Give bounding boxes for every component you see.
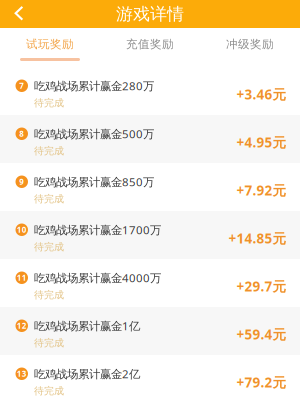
staticText: 8	[19, 128, 24, 139]
staticText: 待完成	[34, 144, 64, 157]
staticText: 13	[17, 368, 27, 379]
button[interactable]: 9	[0, 163, 300, 211]
button[interactable]: 7	[0, 67, 300, 115]
button[interactable]: 试玩奖励	[0, 28, 100, 67]
button[interactable]: Back	[0, 0, 38, 28]
staticText: 11	[17, 272, 27, 283]
staticText: 待完成	[34, 288, 64, 301]
staticText: 吃鸡战场累计赢金1亿	[34, 318, 140, 333]
staticText: +14.85元	[228, 229, 286, 247]
button[interactable]: 8	[0, 115, 300, 163]
staticText: 吃鸡战场累计赢金850万	[34, 174, 154, 189]
staticText: 吃鸡战场累计赢金1700万	[34, 222, 161, 237]
staticText: 吃鸡战场累计赢金280万	[34, 78, 154, 93]
staticText: 12	[17, 320, 27, 331]
staticText: 7	[19, 80, 24, 91]
staticText: 充值奖励	[126, 37, 174, 51]
staticText: +4.95元	[236, 133, 286, 151]
staticText: 10	[17, 224, 27, 235]
staticText: +59.4元	[236, 325, 286, 343]
staticText: 吃鸡战场累计赢金4000万	[34, 270, 161, 285]
staticText: +29.7元	[236, 277, 286, 295]
staticText: +3.46元	[236, 85, 286, 103]
staticText: +79.2元	[236, 373, 286, 391]
button[interactable]: 13	[0, 355, 300, 403]
button[interactable]: 11	[0, 259, 300, 307]
staticText: 9	[19, 176, 24, 187]
staticText: 试玩奖励	[26, 37, 74, 51]
staticText: 冲级奖励	[226, 37, 274, 51]
staticText: 游戏详情	[116, 3, 184, 25]
staticText: 吃鸡战场累计赢金500万	[34, 126, 154, 141]
staticText: 待完成	[34, 336, 64, 349]
button[interactable]: 冲级奖励	[200, 28, 300, 67]
staticText: 待完成	[34, 96, 64, 109]
staticText: +7.92元	[236, 181, 286, 199]
staticText: 待完成	[34, 384, 64, 397]
staticText: 吃鸡战场累计赢金2亿	[34, 366, 140, 381]
button[interactable]: 10	[0, 211, 300, 259]
button[interactable]: 充值奖励	[100, 28, 200, 67]
button[interactable]: 12	[0, 307, 300, 355]
staticText: 待完成	[34, 240, 64, 253]
staticText: 待完成	[34, 192, 64, 205]
